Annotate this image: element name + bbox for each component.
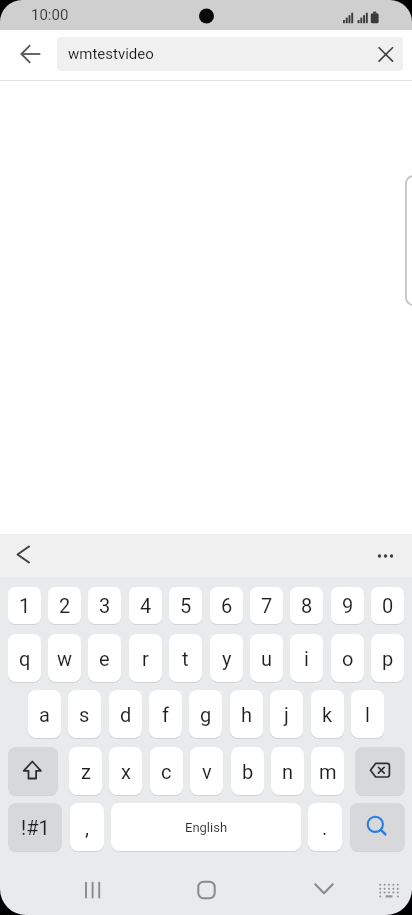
staticText: 6	[221, 594, 233, 617]
button[interactable]: a	[28, 690, 61, 738]
button[interactable]	[7, 540, 41, 574]
staticText: j	[284, 703, 289, 726]
button[interactable]: s	[68, 690, 101, 738]
staticText: s	[79, 703, 90, 726]
staticText: 5	[180, 594, 192, 617]
staticText: 7	[261, 594, 273, 617]
staticText: 4	[140, 594, 152, 617]
button[interactable]: r	[129, 634, 162, 682]
button[interactable]: .	[308, 803, 342, 851]
staticText: 0	[382, 594, 394, 617]
staticText: k	[322, 703, 333, 726]
staticText: 2	[59, 594, 71, 617]
button[interactable]: z	[69, 747, 102, 795]
button[interactable]: t	[169, 634, 202, 682]
button[interactable]: 1	[8, 587, 41, 624]
staticText: 8	[301, 594, 313, 617]
button[interactable]: h	[230, 690, 263, 738]
button[interactable]: 9	[331, 587, 364, 624]
button[interactable]: e	[88, 634, 121, 682]
staticText: !#1	[21, 816, 50, 839]
staticText: 3	[99, 594, 111, 617]
staticText: e	[99, 647, 110, 670]
button[interactable]: 3	[88, 587, 121, 624]
button[interactable]: i	[290, 634, 323, 682]
staticText: c	[161, 760, 172, 783]
staticText: v	[202, 760, 212, 783]
staticText: r	[142, 647, 149, 670]
button[interactable]	[186, 868, 226, 908]
staticText: p	[382, 647, 394, 670]
staticText: w	[57, 647, 73, 670]
staticText: l	[365, 703, 370, 726]
button[interactable]: b	[231, 747, 264, 795]
button[interactable]: m	[311, 747, 344, 795]
button[interactable]	[304, 868, 344, 908]
button[interactable]: n	[271, 747, 304, 795]
button[interactable]: g	[189, 690, 222, 738]
button[interactable]	[372, 872, 406, 906]
button[interactable]: 4	[129, 587, 162, 624]
button[interactable]: l	[351, 690, 384, 738]
staticText: q	[19, 647, 31, 670]
button[interactable]: v	[190, 747, 223, 795]
staticText: 9	[342, 594, 354, 617]
button[interactable]: j	[270, 690, 303, 738]
staticText: a	[39, 703, 50, 726]
staticText: m	[319, 760, 337, 783]
button[interactable]	[371, 40, 401, 70]
button[interactable]: x	[109, 747, 142, 795]
button[interactable]: p	[371, 634, 404, 682]
staticText: English	[185, 820, 228, 835]
button[interactable]: 2	[48, 587, 81, 624]
button[interactable]: ,	[70, 803, 104, 851]
button[interactable]: k	[311, 690, 344, 738]
staticText: d	[120, 703, 132, 726]
button[interactable]	[368, 540, 404, 574]
button[interactable]: c	[150, 747, 183, 795]
button[interactable]: y	[210, 634, 243, 682]
staticText: t	[182, 647, 189, 670]
button[interactable]: 5	[169, 587, 202, 624]
button[interactable]: w	[48, 634, 81, 682]
button[interactable]: wmtestvideo	[57, 37, 403, 71]
button[interactable]	[70, 866, 110, 910]
staticText: g	[200, 703, 212, 726]
staticText: x	[121, 760, 131, 783]
button[interactable]: u	[250, 634, 283, 682]
staticText: u	[261, 647, 273, 670]
button[interactable]	[355, 747, 405, 795]
button[interactable]: English	[111, 803, 301, 851]
staticText: 10:00	[31, 6, 69, 24]
staticText: .	[322, 816, 328, 839]
staticText: wmtestvideo	[68, 45, 154, 63]
staticText: o	[342, 647, 354, 670]
button[interactable]	[8, 747, 58, 795]
button[interactable]: q	[8, 634, 41, 682]
button[interactable]: 6	[210, 587, 243, 624]
staticText: z	[81, 760, 91, 783]
staticText: n	[282, 760, 294, 783]
button[interactable]: o	[331, 634, 364, 682]
button[interactable]: 0	[371, 587, 404, 624]
staticText: ,	[85, 816, 89, 839]
button[interactable]	[10, 38, 46, 70]
staticText: b	[242, 760, 254, 783]
staticText: h	[241, 703, 253, 726]
staticText: i	[304, 647, 309, 670]
button[interactable]: 7	[250, 587, 283, 624]
button[interactable]	[400, 176, 412, 305]
button[interactable]: d	[109, 690, 142, 738]
staticText: 1	[19, 594, 31, 617]
button[interactable]	[350, 803, 405, 851]
staticText: y	[222, 647, 232, 670]
button[interactable]: 8	[290, 587, 323, 624]
staticText: f	[162, 703, 169, 726]
button[interactable]: f	[149, 690, 182, 738]
button[interactable]: !#1	[8, 803, 62, 851]
